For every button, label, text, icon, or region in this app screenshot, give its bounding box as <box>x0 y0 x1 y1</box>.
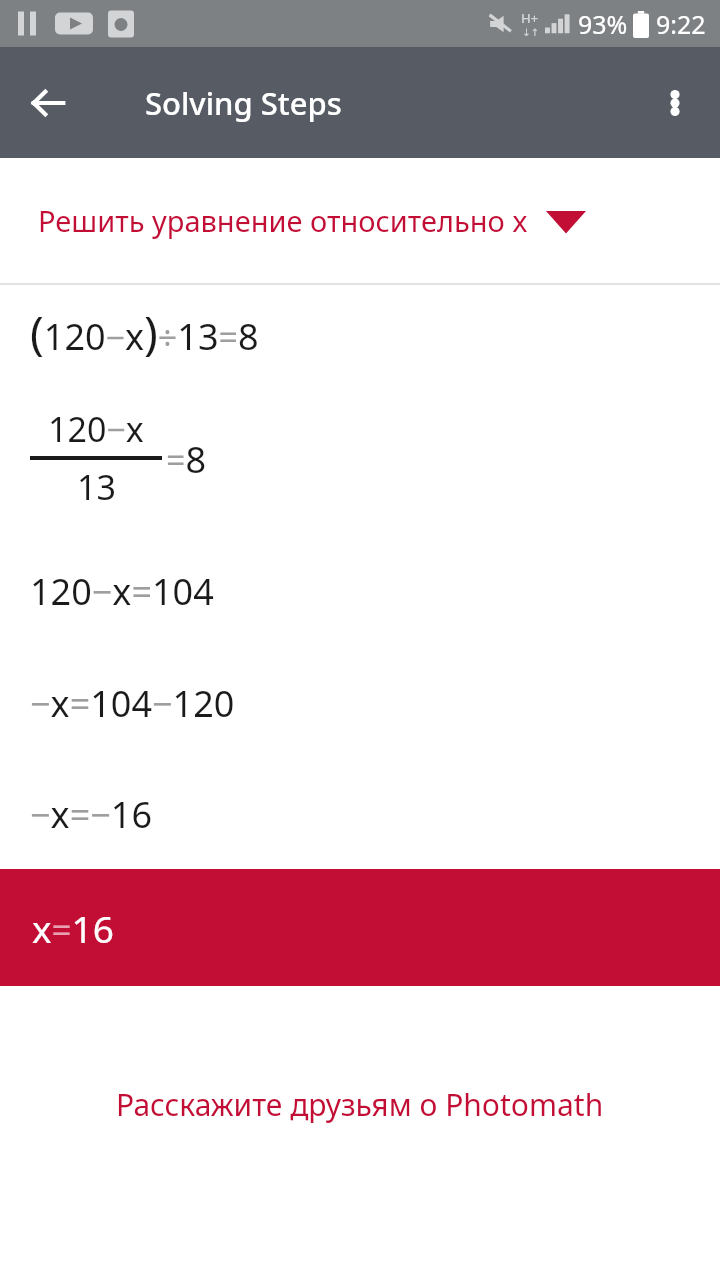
staticText: Решить уравнение относительно x <box>38 201 528 240</box>
button[interactable]: −x=104−120 <box>30 679 235 728</box>
button[interactable]: Расскажите друзьям о Photomath <box>116 1084 604 1125</box>
button[interactable]: (120−x)÷13=8 <box>30 301 259 364</box>
staticText: 9:22 <box>656 7 706 41</box>
staticText: 120−x <box>48 406 144 452</box>
button[interactable]: −x=−16 <box>30 790 153 839</box>
staticText: H+ <box>521 9 539 27</box>
staticText: Solving Steps <box>145 82 342 124</box>
staticText: x=16 <box>32 903 114 953</box>
button[interactable]: x=16 <box>0 869 720 986</box>
staticText: Расскажите друзьям о Photomath <box>116 1084 604 1125</box>
button[interactable]: 120−x=104 <box>30 567 214 616</box>
staticText: =8 <box>166 435 207 484</box>
staticText: (120−x)÷13=8 <box>30 301 259 364</box>
button[interactable]: More options <box>643 71 707 135</box>
staticText: ↓↑ <box>522 27 539 39</box>
staticText: 93% <box>578 7 628 41</box>
button[interactable]: Back <box>16 71 80 135</box>
button[interactable]: Решить уравнение относительно x <box>0 158 720 283</box>
staticText: 13 <box>77 464 116 510</box>
